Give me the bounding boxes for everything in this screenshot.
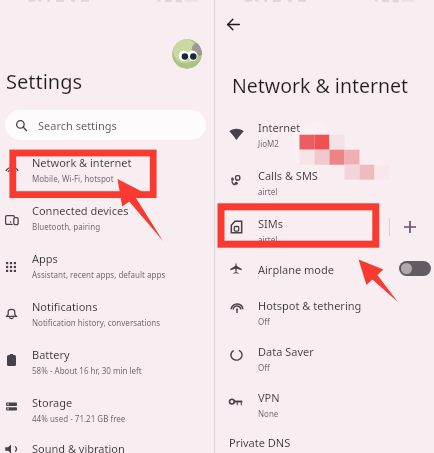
other: VPN bbox=[229, 398, 243, 406]
staticText: Airplane mode bbox=[258, 262, 334, 277]
other: Connected devices bbox=[5, 215, 19, 225]
button[interactable]: VPN bbox=[258, 390, 434, 419]
staticText: JioM2 bbox=[258, 138, 279, 149]
button[interactable]: Sound & vibration bbox=[32, 441, 246, 453]
staticText: Storage bbox=[32, 395, 73, 410]
staticText: Connected devices bbox=[32, 203, 129, 218]
button[interactable]: Network & internet bbox=[32, 155, 246, 184]
staticText: Settings bbox=[6, 68, 83, 95]
other: Battery bbox=[7, 354, 16, 366]
staticText: Network & internet bbox=[232, 72, 409, 99]
staticText: Battery bbox=[32, 347, 70, 362]
other: Data Saver bbox=[230, 349, 243, 361]
staticText: airtel bbox=[258, 186, 278, 197]
staticText: Off bbox=[258, 316, 270, 327]
other: Notifications bbox=[6, 307, 17, 319]
other: SIMs bbox=[231, 221, 242, 233]
button[interactable]: Connected devices bbox=[32, 203, 246, 232]
staticText: None bbox=[258, 408, 279, 419]
other: Internet bbox=[229, 127, 244, 140]
staticText: Internet bbox=[258, 120, 301, 135]
button[interactable]: Calls & SMS bbox=[258, 168, 434, 197]
staticText: 44% used - 71.21 GB free bbox=[32, 413, 126, 424]
staticText: Private DNS bbox=[229, 435, 291, 450]
staticText: VPN bbox=[258, 390, 280, 405]
other: Airplane bbox=[230, 262, 242, 274]
staticText: Assistant, recent apps, default apps bbox=[32, 269, 166, 280]
button[interactable]: Apps bbox=[32, 251, 246, 280]
staticText: Sound & vibration bbox=[32, 441, 125, 453]
button[interactable]: Back bbox=[221, 12, 245, 36]
staticText: 58% - About 16 hr, 30 min left bbox=[32, 365, 142, 376]
button[interactable]: Account bbox=[172, 39, 202, 69]
button[interactable]: Storage bbox=[32, 395, 246, 424]
button[interactable]: Airplane mode bbox=[258, 262, 434, 277]
staticText: Off bbox=[258, 362, 270, 373]
staticText: SIMs bbox=[258, 216, 284, 231]
staticText: Data Saver bbox=[258, 344, 314, 359]
button[interactable]: Add SIM bbox=[397, 214, 423, 240]
staticText: Mobile, Wi-Fi, hotspot bbox=[32, 173, 114, 184]
staticText: airtel bbox=[258, 234, 278, 245]
button[interactable]: Airplane mode toggle bbox=[399, 261, 431, 276]
staticText: Hotspot & tethering bbox=[258, 298, 362, 313]
other: Sound bbox=[5, 444, 17, 453]
staticText: Notifications bbox=[32, 299, 98, 314]
staticText: Notification history, conversations bbox=[32, 317, 161, 328]
staticText: Search settings bbox=[38, 118, 117, 133]
button[interactable]: Hotspot & tethering bbox=[258, 298, 434, 327]
button[interactable]: Battery bbox=[32, 347, 246, 376]
staticText: Bluetooth, pairing bbox=[32, 221, 101, 232]
button[interactable]: Search settings bbox=[5, 110, 206, 140]
staticText: Network & internet bbox=[32, 155, 132, 170]
other: Calls bbox=[231, 175, 242, 186]
staticText: Calls & SMS bbox=[258, 168, 318, 183]
button[interactable]: Data Saver bbox=[258, 344, 434, 373]
other: Apps bbox=[6, 262, 16, 272]
other: Storage bbox=[6, 402, 17, 412]
staticText: Apps bbox=[32, 251, 58, 266]
button[interactable]: Private DNS bbox=[229, 435, 434, 450]
button[interactable]: Internet bbox=[258, 120, 434, 149]
other: Hotspot bbox=[231, 303, 243, 314]
button[interactable]: SIMs bbox=[258, 216, 434, 245]
button[interactable]: Notifications bbox=[32, 299, 246, 328]
other: Network bbox=[5, 165, 19, 175]
